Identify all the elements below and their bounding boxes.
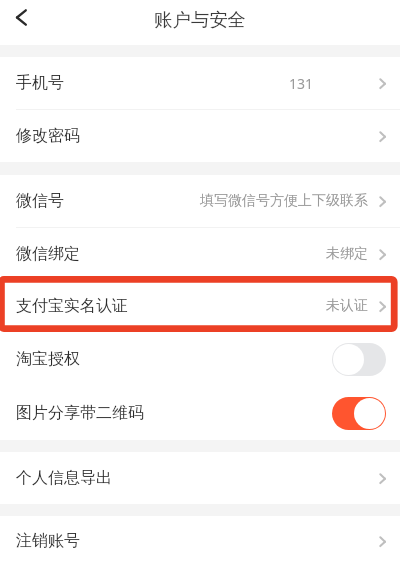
staticText: 支付宝实名认证 bbox=[16, 296, 128, 316]
staticText: 注销账号 bbox=[16, 531, 80, 551]
button[interactable]: 手机号 bbox=[0, 57, 400, 109]
staticText: 淘宝授权 bbox=[16, 349, 80, 369]
button[interactable]: 图片分享带二维码 bbox=[0, 386, 400, 440]
staticText: 未绑定 bbox=[326, 245, 368, 263]
staticText: 填写微信号方便上下级联系 bbox=[200, 192, 368, 210]
button[interactable]: 微信号 bbox=[0, 175, 400, 227]
button[interactable]: 修改密码 bbox=[0, 110, 400, 162]
button[interactable]: 图片分享带二维码 bbox=[332, 397, 386, 430]
staticText: 131 bbox=[289, 74, 314, 93]
button[interactable]: 微信绑定 bbox=[0, 228, 400, 280]
button[interactable]: Back bbox=[0, 0, 42, 38]
staticText: 账户与安全 bbox=[154, 8, 246, 31]
button[interactable]: 注销账号 bbox=[0, 516, 400, 566]
button[interactable]: 淘宝授权 bbox=[0, 332, 400, 386]
button[interactable]: 支付宝实名认证 bbox=[0, 280, 400, 332]
staticText: 手机号 bbox=[16, 73, 64, 93]
staticText: 微信号 bbox=[16, 191, 64, 211]
staticText: 修改密码 bbox=[16, 126, 80, 146]
button[interactable]: 个人信息导出 bbox=[0, 452, 400, 504]
button[interactable]: 淘宝授权 bbox=[332, 343, 386, 376]
staticText: 个人信息导出 bbox=[16, 468, 112, 488]
staticText: 图片分享带二维码 bbox=[16, 403, 144, 423]
staticText: 微信绑定 bbox=[16, 244, 80, 264]
staticText: 未认证 bbox=[326, 297, 368, 315]
